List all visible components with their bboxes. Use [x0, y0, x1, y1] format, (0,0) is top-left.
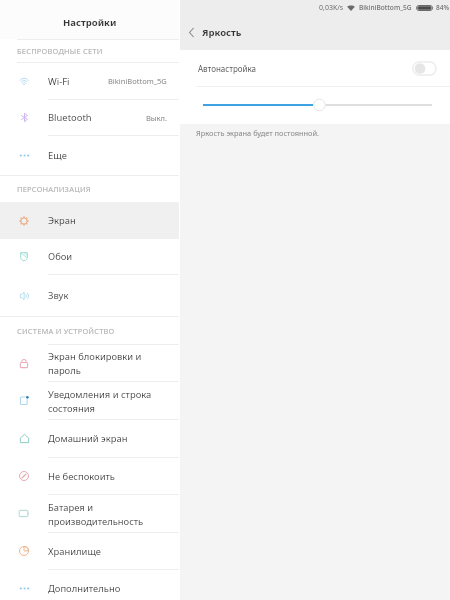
- staticText: Дополнительно: [48, 582, 179, 595]
- staticText: Bluetooth: [48, 111, 146, 124]
- button[interactable]: Дополнительно: [0, 570, 179, 600]
- staticText: Настройки: [63, 16, 117, 29]
- staticText: СИСТЕМА И УСТРОЙСТВО: [17, 326, 115, 336]
- staticText: Обои: [48, 250, 179, 263]
- button[interactable]: Еще: [0, 136, 179, 175]
- staticText: Еще: [48, 149, 179, 162]
- button[interactable]: Батарея и производительность: [0, 495, 179, 532]
- staticText: BikiniBottom_5G: [108, 76, 167, 86]
- staticText: BikiniBottom_5G: [359, 3, 412, 12]
- button[interactable]: Экран блокировки и пароль: [0, 345, 179, 381]
- staticText: Яркость: [202, 26, 242, 39]
- staticText: Уведомления и строка состояния: [48, 388, 179, 414]
- staticText: Выкл.: [146, 113, 167, 123]
- staticText: Яркость экрана будет постоянной.: [196, 128, 320, 138]
- button[interactable]: Не беспокоить: [0, 458, 179, 494]
- button[interactable]: Звук: [0, 275, 179, 316]
- staticText: Автонастройка: [198, 63, 257, 74]
- button[interactable]: Хранилище: [0, 533, 179, 569]
- button[interactable]: Назад: [180, 20, 202, 45]
- button[interactable]: Домашний экран: [0, 420, 179, 457]
- staticText: БЕСПРОВОДНЫЕ СЕТИ: [17, 46, 103, 56]
- staticText: Экран: [48, 214, 179, 227]
- button[interactable]: Обои: [0, 239, 179, 274]
- staticText: ПЕРСОНАЛИЗАЦИЯ: [17, 184, 91, 194]
- staticText: Звук: [48, 289, 179, 302]
- button[interactable]: Экран: [0, 202, 179, 239]
- button[interactable]: Уведомления и строка состояния: [0, 382, 179, 419]
- staticText: Экран блокировки и пароль: [48, 350, 179, 376]
- staticText: Домашний экран: [48, 432, 179, 445]
- staticText: 84%: [436, 3, 450, 12]
- staticText: Wi-Fi: [48, 75, 108, 88]
- button[interactable]: Автонастройка: [180, 50, 450, 86]
- staticText: 0,03K/s: [319, 3, 344, 13]
- staticText: Хранилище: [48, 545, 179, 558]
- staticText: Не беспокоить: [48, 470, 179, 483]
- button[interactable]: Wi-Fi: [0, 63, 179, 99]
- button[interactable]: Bluetooth: [0, 100, 179, 135]
- staticText: Батарея и производительность: [48, 501, 179, 527]
- button[interactable]: Автонастройка: [412, 61, 437, 76]
